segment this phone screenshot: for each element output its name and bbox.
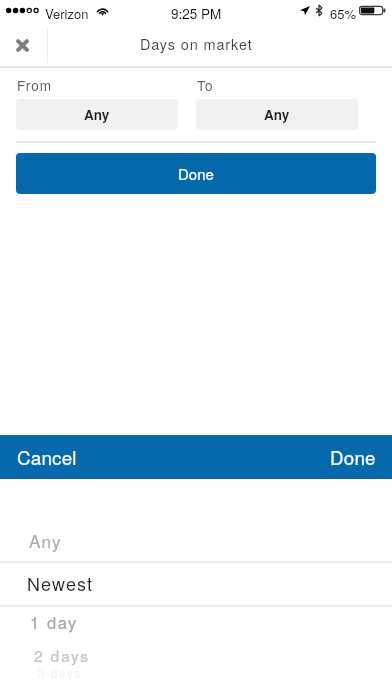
staticText: 3 days: [38, 664, 82, 681]
button[interactable]: Newest: [0, 566, 392, 600]
staticText: 1 day: [30, 610, 78, 634]
staticText: To: [197, 75, 214, 94]
staticText: Verizon: [45, 4, 89, 23]
button[interactable]: 3 days: [0, 655, 392, 689]
button[interactable]: Any: [16, 99, 178, 130]
button[interactable]: Any: [196, 99, 358, 130]
staticText: Cancel: [17, 443, 77, 470]
staticText: Newest: [27, 570, 94, 596]
staticText: Done: [330, 443, 376, 470]
button[interactable]: Done: [16, 153, 376, 194]
button[interactable]: 2 days: [0, 638, 392, 672]
button[interactable]: Done: [318, 435, 392, 478]
staticText: Days on market: [140, 33, 253, 54]
staticText: 65%: [330, 4, 357, 23]
staticText: Any: [84, 105, 110, 124]
staticText: Done: [178, 163, 214, 184]
staticText: 9:25 PM: [171, 4, 222, 23]
button[interactable]: Close: [4, 25, 40, 66]
button[interactable]: Cancel: [0, 435, 89, 478]
button[interactable]: 1 day: [0, 605, 392, 639]
button[interactable]: Any: [0, 523, 392, 557]
staticText: 2 days: [34, 644, 90, 666]
staticText: Any: [264, 105, 290, 124]
staticText: From: [17, 75, 52, 94]
staticText: Any: [29, 528, 62, 553]
